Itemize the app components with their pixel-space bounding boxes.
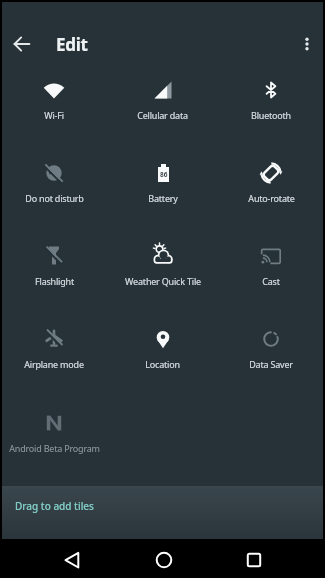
button[interactable]: Wi-Fi: [0, 49, 108, 132]
button[interactable]: Airplane mode: [0, 298, 108, 381]
staticText: Flashlight: [35, 275, 74, 287]
staticText: Location: [145, 358, 180, 370]
staticText: Drag to add tiles: [15, 499, 94, 513]
button[interactable]: Cast: [217, 215, 325, 298]
button[interactable]: [140, 540, 188, 578]
staticText: 86: [160, 170, 168, 179]
staticText: Android Beta Program: [9, 442, 100, 454]
staticText: Airplane mode: [24, 358, 84, 370]
staticText: Auto-rotate: [248, 192, 295, 204]
button[interactable]: Android Beta Program: [0, 382, 108, 465]
button[interactable]: Do not disturb: [0, 132, 108, 215]
staticText: Bluetooth: [251, 109, 291, 121]
button[interactable]: [2, 24, 42, 64]
button[interactable]: [288, 24, 325, 64]
button[interactable]: Location: [108, 298, 217, 381]
staticText: Battery: [148, 192, 178, 204]
button[interactable]: Cellular data: [108, 49, 217, 132]
button[interactable]: Weather Quick Tile: [108, 215, 217, 298]
button[interactable]: [48, 540, 96, 578]
button[interactable]: Flashlight: [0, 215, 108, 298]
staticText: Edit: [56, 33, 88, 56]
button[interactable]: Auto-rotate: [217, 132, 325, 215]
button[interactable]: [230, 540, 278, 578]
staticText: Weather Quick Tile: [125, 275, 201, 287]
button[interactable]: Drag to add tiles: [0, 486, 325, 539]
staticText: Do not disturb: [25, 192, 84, 204]
staticText: Wi-Fi: [44, 109, 64, 121]
button[interactable]: 86: [108, 132, 217, 215]
button[interactable]: Bluetooth: [217, 49, 325, 132]
staticText: Data Saver: [249, 358, 293, 370]
staticText: Cast: [262, 275, 280, 287]
staticText: Cellular data: [137, 109, 188, 121]
button[interactable]: Data Saver: [217, 298, 325, 381]
